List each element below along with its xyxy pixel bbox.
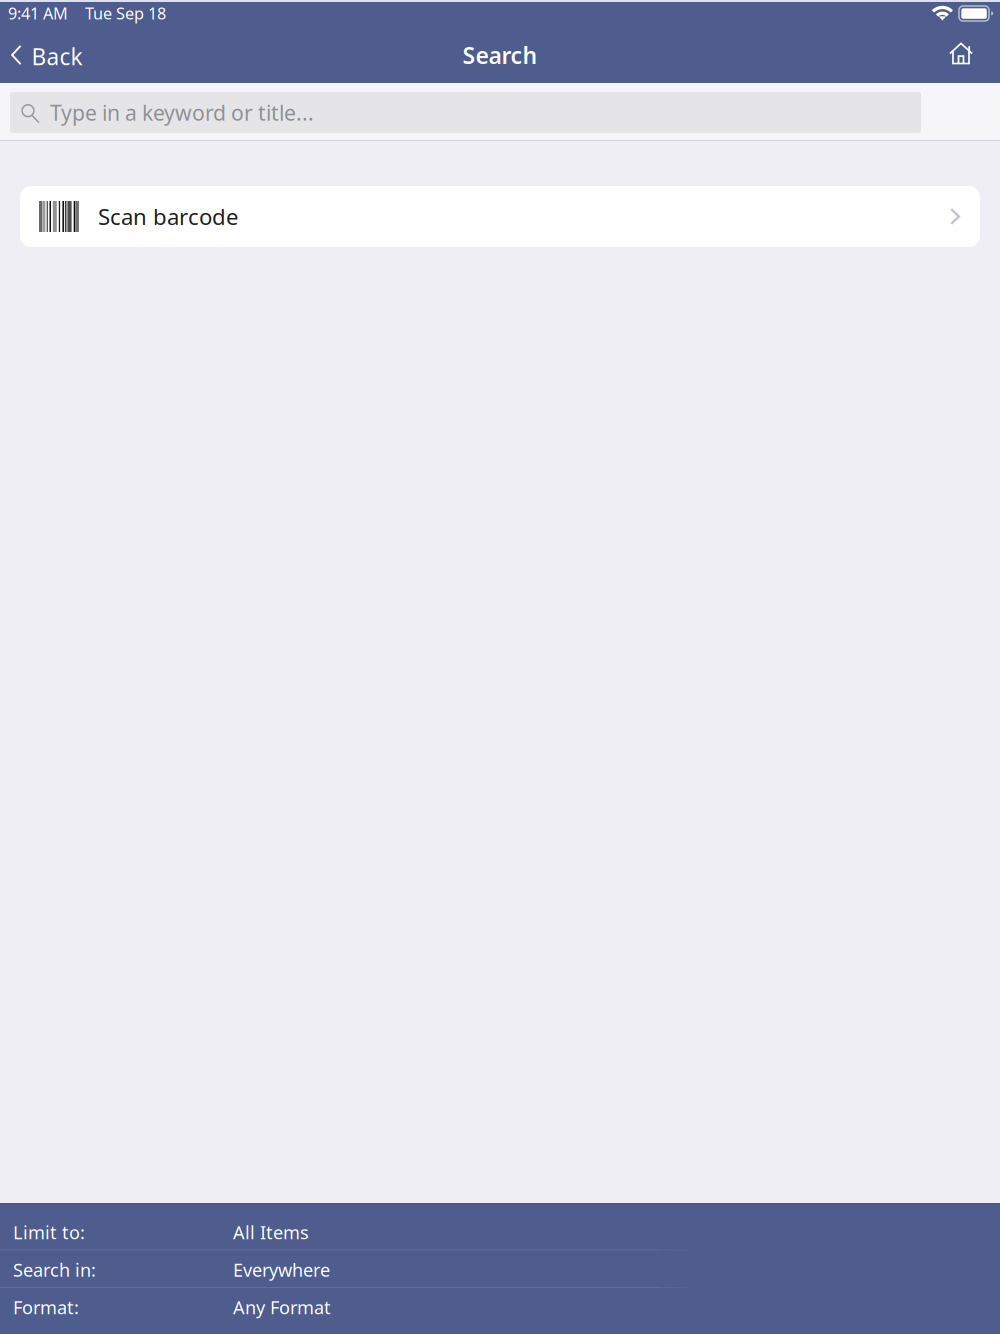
staticText: Tue Sep 18	[85, 2, 166, 24]
staticText: Limit to:	[13, 1220, 85, 1245]
button[interactable]: Search in:	[0, 1250, 1000, 1287]
staticText: Back	[31, 41, 82, 72]
button[interactable]: Back	[0, 30, 92, 83]
button[interactable]: Scan barcode	[20, 186, 980, 247]
button[interactable]: Home	[949, 30, 1000, 83]
staticText: Search	[462, 39, 537, 71]
staticText: 9:41 AM	[8, 2, 68, 24]
staticText: All Items	[233, 1220, 309, 1245]
staticText: Type in a keyword or title...	[50, 98, 314, 127]
button[interactable]: Format:	[0, 1288, 1000, 1324]
button[interactable]: Limit to:	[0, 1213, 1000, 1249]
staticText: Search in:	[13, 1257, 96, 1282]
staticText: Everywhere	[233, 1257, 330, 1282]
staticText: Scan barcode	[98, 201, 238, 231]
staticText: Any Format	[233, 1295, 331, 1320]
staticText: Format:	[13, 1295, 79, 1320]
button[interactable]: Type in a keyword or title...	[10, 92, 921, 133]
